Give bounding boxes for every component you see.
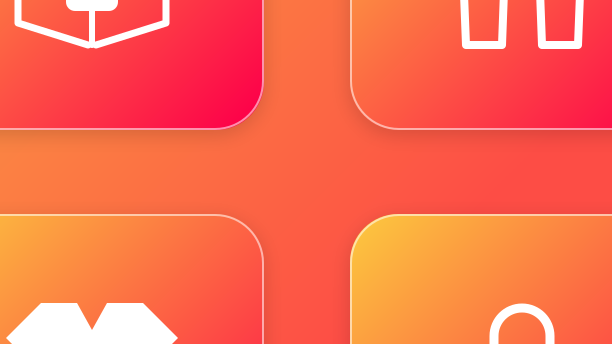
button[interactable]: T-shirts (0, 214, 264, 344)
button[interactable]: Bottoms (350, 0, 612, 130)
button[interactable]: Bags (350, 214, 612, 344)
button[interactable]: Tops (0, 0, 264, 130)
